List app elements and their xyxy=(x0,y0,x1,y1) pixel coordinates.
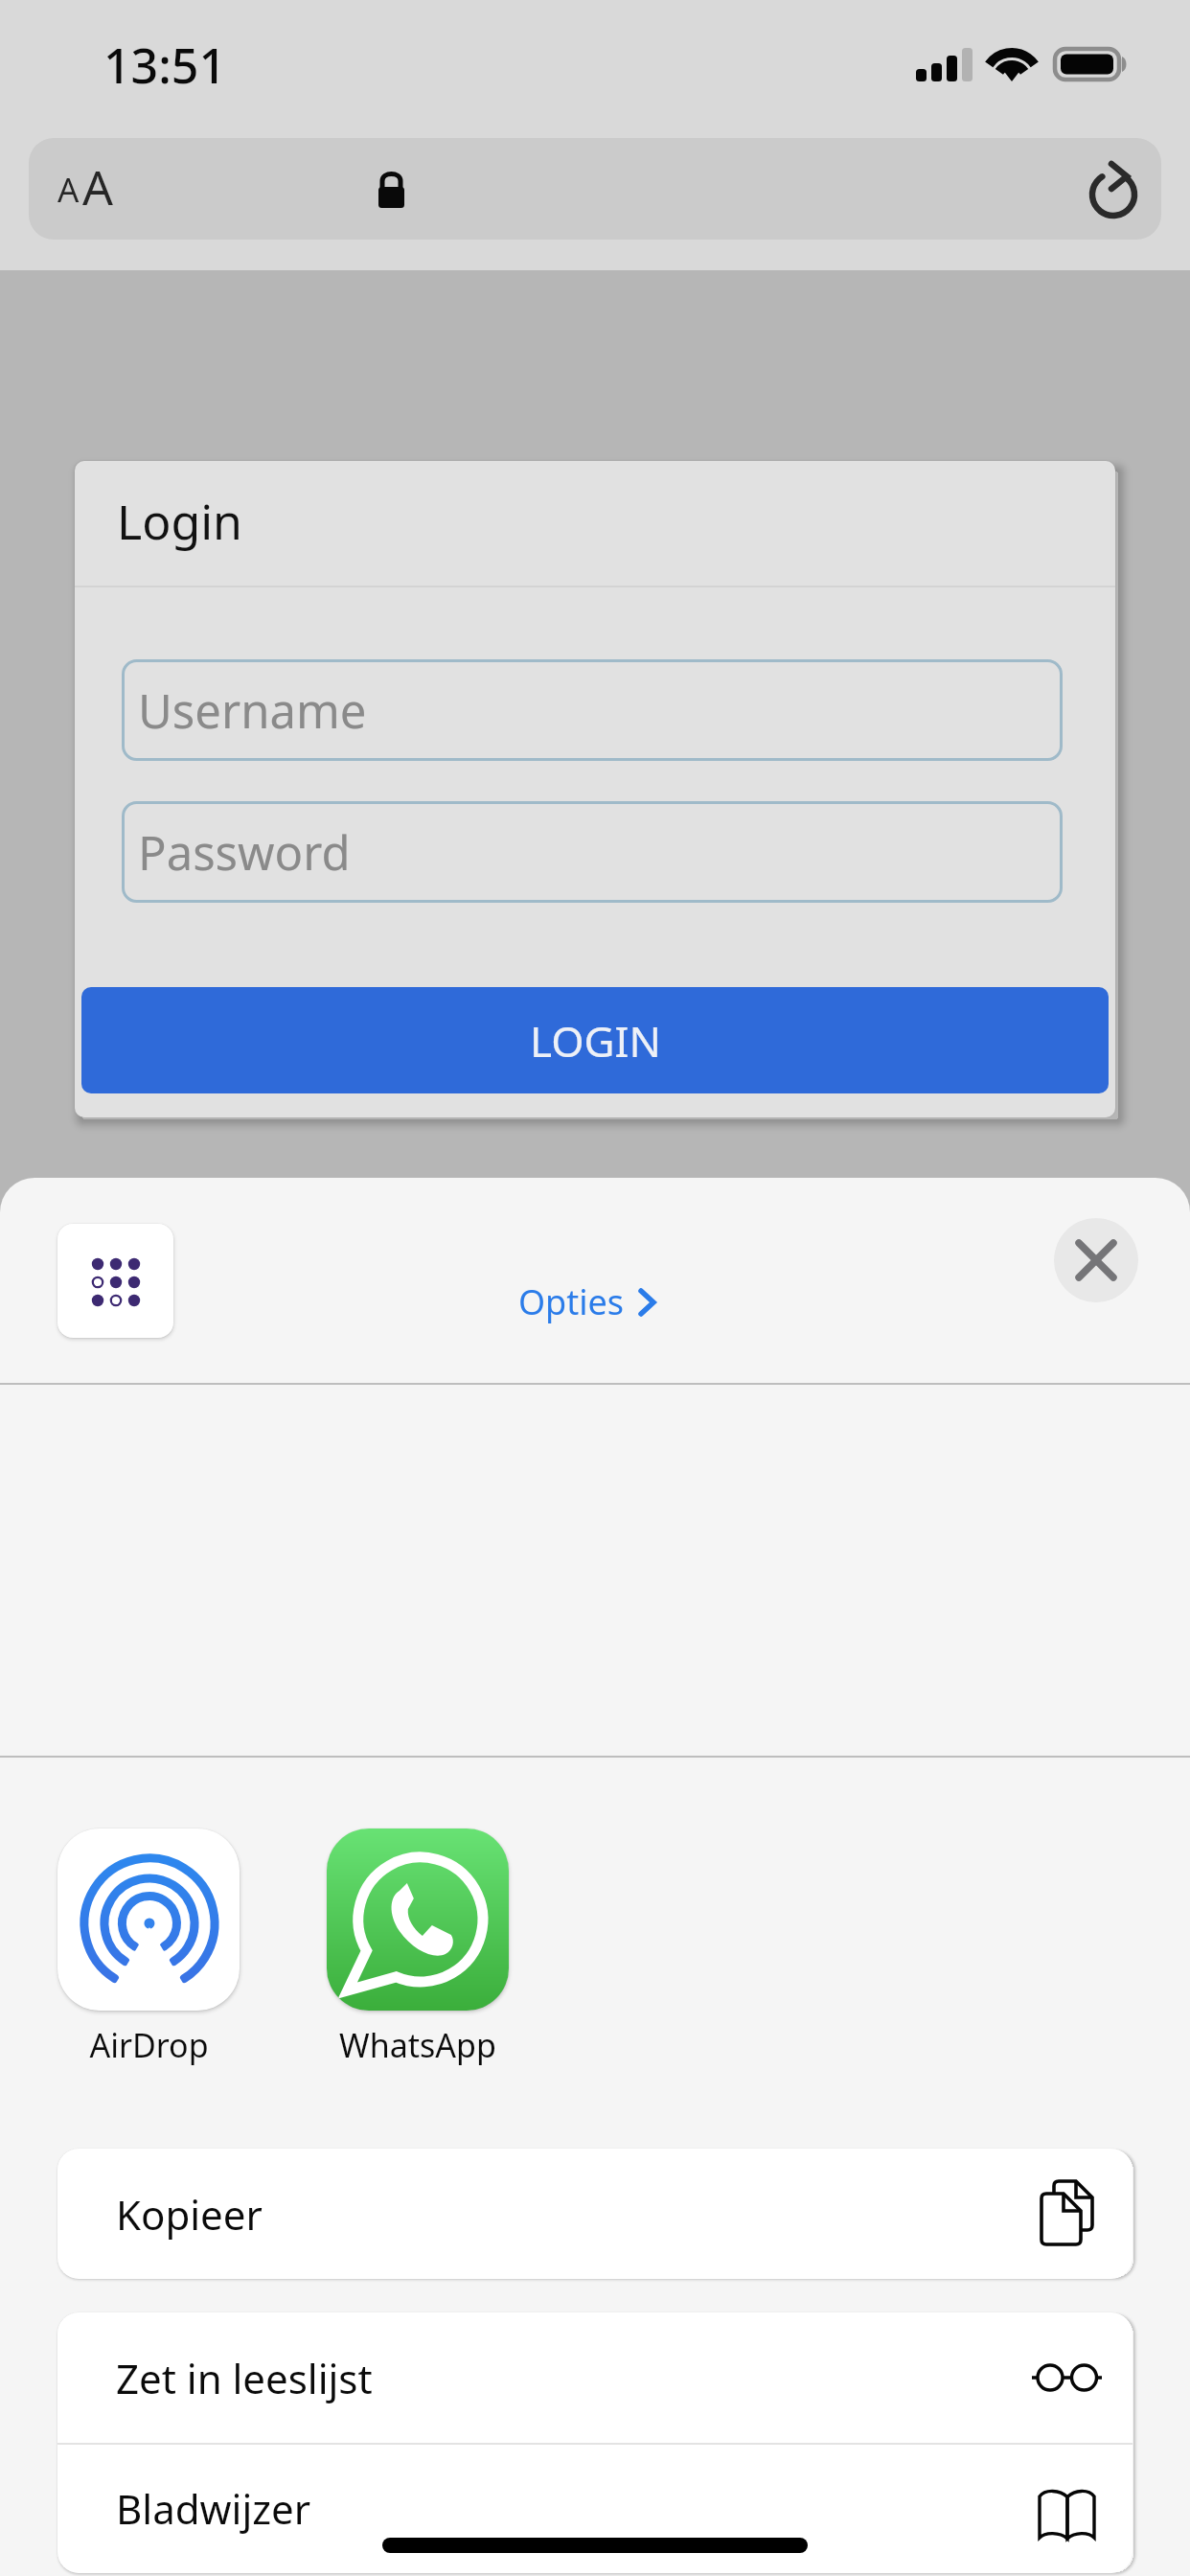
staticText: WhatsApp xyxy=(339,2023,496,2067)
button[interactable]: Kopieer xyxy=(57,2149,1133,2279)
button[interactable]: WhatsApp xyxy=(240,1828,595,2011)
staticText: A xyxy=(82,154,113,219)
button[interactable]: Site icon xyxy=(57,1224,173,1338)
staticText: LOGIN xyxy=(530,1012,661,1069)
staticText: AirDrop xyxy=(89,2023,209,2067)
button[interactable]: AirDrop xyxy=(0,1828,326,2011)
staticText: 13:51 xyxy=(103,33,226,98)
button[interactable]: Zet in leeslijst xyxy=(57,2312,1133,2443)
button[interactable]: Page settings xyxy=(29,138,1161,240)
staticText: Login xyxy=(117,489,242,554)
button[interactable]: Close xyxy=(1054,1218,1138,1302)
staticText: Kopieer xyxy=(116,2187,263,2242)
button[interactable]: Bladwijzer xyxy=(57,2443,1133,2573)
staticText: Zet in leeslijst xyxy=(116,2351,373,2405)
staticText: A xyxy=(57,167,80,213)
button[interactable]: Password xyxy=(122,801,1063,903)
button[interactable]: LOGIN xyxy=(81,987,1109,1093)
button[interactable]: Opties xyxy=(518,1278,657,1325)
staticText: Opties xyxy=(518,1278,625,1325)
button[interactable]: Username xyxy=(122,659,1063,761)
staticText: Username xyxy=(138,678,367,743)
staticText: Bladwijzer xyxy=(116,2481,310,2536)
staticText: Password xyxy=(138,820,351,885)
